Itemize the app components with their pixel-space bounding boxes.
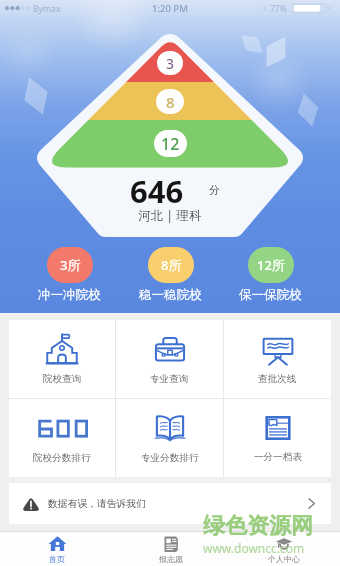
- button[interactable]: 报志愿: [114, 532, 227, 566]
- button[interactable]: 个人中心: [227, 532, 340, 566]
- staticText: 院校分数排行: [33, 452, 91, 464]
- button[interactable]: 3所: [38, 247, 101, 303]
- other: More: [305, 497, 318, 510]
- button[interactable]: 专业查询: [116, 320, 223, 398]
- staticText: 8: [166, 92, 175, 112]
- button[interactable]: 院校分数排行: [9, 399, 115, 477]
- staticText: 12所: [257, 256, 285, 274]
- staticText: 3所: [60, 256, 81, 274]
- staticText: 77%: [270, 3, 287, 15]
- staticText: 保一保院校: [239, 287, 302, 303]
- staticText: 冲一冲院校: [38, 287, 101, 303]
- button[interactable]: 查批次线: [224, 320, 331, 398]
- staticText: www.downcc.com: [203, 540, 305, 556]
- staticText: 646: [130, 170, 184, 212]
- staticText: 专业分数排行: [141, 452, 199, 464]
- button[interactable]: 一分一档表: [224, 399, 331, 477]
- button[interactable]: 专业分数排行: [116, 399, 223, 477]
- staticText: 1:20 PM: [152, 2, 188, 15]
- staticText: 报志愿: [159, 554, 183, 564]
- staticText: 8所: [161, 256, 182, 274]
- button[interactable]: 首页: [0, 532, 114, 566]
- button[interactable]: 12所: [239, 247, 302, 303]
- staticText: 稳一稳院校: [139, 287, 202, 303]
- staticText: 绿色资源网: [203, 512, 313, 540]
- button[interactable]: 8所: [139, 247, 202, 303]
- staticText: 12: [161, 133, 180, 155]
- staticText: 数据有误，请告诉我们: [48, 498, 146, 510]
- staticText: 专业查询: [150, 373, 189, 385]
- staticText: 一分一档表: [254, 451, 302, 463]
- staticText: 河北 | 理科: [138, 207, 202, 224]
- staticText: 首页: [49, 554, 65, 564]
- staticText: 查批次线: [258, 373, 297, 385]
- staticText: 院校查询: [43, 373, 82, 385]
- staticText: Bymax: [33, 3, 61, 15]
- button[interactable]: 院校查询: [9, 320, 115, 398]
- staticText: 分: [209, 183, 220, 197]
- staticText: 个人中心: [268, 554, 300, 564]
- staticText: 3: [166, 54, 175, 73]
- button[interactable]: 数据有误，请告诉我们: [9, 483, 331, 524]
